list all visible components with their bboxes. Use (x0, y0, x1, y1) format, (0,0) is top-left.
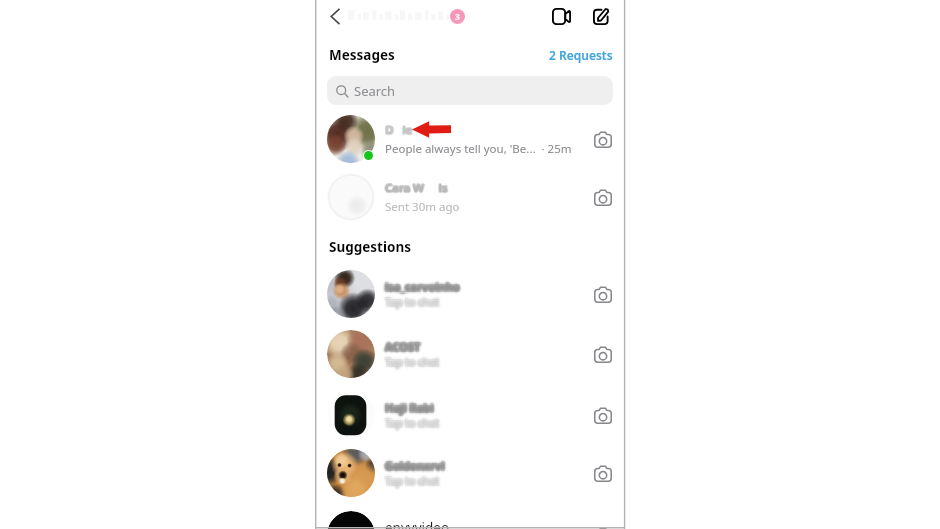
staticText: Cara W ls (385, 181, 448, 197)
staticText: ACOST (383, 339, 419, 354)
staticText: isa_carvoinho (386, 276, 461, 291)
staticText: D le (384, 123, 412, 139)
staticText: Tap to chat (382, 473, 437, 487)
staticText: Tap to chat (384, 477, 439, 491)
staticText: Tap to chat (384, 352, 439, 366)
staticText: Tap to chat (385, 474, 440, 488)
staticText: Haji Rabi (386, 399, 435, 414)
button[interactable]: Camera (590, 522, 616, 529)
staticText: D le (385, 121, 413, 137)
staticText: Cara W ls (386, 179, 449, 195)
staticText: Haji Rabi (386, 401, 435, 416)
staticText: Cara W ls (385, 180, 448, 196)
staticText: Tap to chat (386, 416, 441, 430)
button[interactable]: Haji Rabi (316, 386, 624, 444)
staticText: Goldenxrvl (382, 457, 442, 472)
staticText: Goldenxrvl (384, 457, 444, 472)
staticText: ACOST (386, 341, 422, 356)
staticText: Tap to chat (384, 419, 439, 433)
staticText: Cara W ls (385, 180, 448, 196)
staticText: Haji Rabi (382, 401, 431, 416)
staticText: Goldenxrvl (384, 459, 444, 474)
button[interactable]: Camera (590, 460, 616, 486)
staticText: Tap to chat (384, 418, 439, 432)
staticText: isa_carvoinho (385, 280, 460, 295)
staticText: Tap to chat (385, 297, 440, 311)
button[interactable]: envyvideo (316, 506, 624, 529)
staticText: ACOST (384, 339, 420, 354)
button[interactable]: 2 Requests (549, 47, 613, 63)
staticText: isa_carvoinho (388, 279, 463, 294)
staticText: isa_carvoinho (382, 280, 457, 295)
staticText: ACOST (383, 340, 419, 355)
staticText: Haji Rabi (385, 401, 434, 416)
staticText: Tap to chat (388, 417, 443, 431)
staticText: Tap to chat (386, 355, 441, 369)
staticText: ACOST (386, 338, 422, 353)
staticText: Tap to chat (386, 358, 441, 372)
button[interactable]: New message (588, 3, 614, 29)
button[interactable]: Video call (548, 3, 574, 29)
staticText: D le (384, 121, 412, 137)
staticText: Tap to chat (388, 354, 443, 368)
staticText: Haji Rabi (384, 398, 433, 413)
staticText: isa_carvoinho (385, 279, 460, 294)
button[interactable]: Camera (590, 126, 616, 152)
staticText: Tap to chat (384, 415, 439, 429)
staticText: Tap to chat (386, 354, 441, 368)
button[interactable]: Cara W ls (316, 170, 624, 224)
staticText: Goldenxrvl (388, 457, 448, 472)
staticText: Tap to chat (386, 356, 441, 370)
staticText: Tap to chat (385, 476, 440, 490)
button[interactable]: isa_carvoinho (316, 265, 624, 323)
staticText: Tap to chat (382, 355, 437, 369)
staticText: Goldenxrvl (387, 458, 447, 473)
button[interactable]: D le (316, 112, 624, 166)
staticText: Haji Rabi (385, 400, 434, 415)
staticText: Cara W ls (384, 180, 447, 196)
staticText: ACOST (384, 337, 420, 352)
staticText: Tap to chat (386, 418, 441, 432)
staticText: isa_carvoinho (386, 280, 461, 295)
staticText: Tap to chat (384, 415, 439, 429)
staticText: Tap to chat (386, 414, 441, 428)
staticText: D le (384, 122, 412, 138)
staticText: ACOST (387, 338, 423, 353)
staticText: Tap to chat (388, 294, 443, 308)
staticText: Cara W ls (386, 179, 449, 195)
staticText: Haji Rabi (388, 399, 437, 414)
staticText: Haji Rabi (383, 401, 432, 416)
staticText: Tap to chat (382, 417, 437, 431)
staticText: Goldenxrvl (388, 457, 448, 472)
staticText: Tap to chat (384, 294, 439, 308)
staticText: isa_carvoinho (384, 281, 459, 296)
staticText: ACOST (385, 337, 421, 352)
staticText: Haji Rabi (383, 401, 432, 416)
button[interactable]: Search (327, 76, 613, 105)
staticText: Haji Rabi (382, 400, 431, 415)
staticText: Goldenxrvl (384, 461, 444, 476)
staticText: Haji Rabi (386, 403, 435, 418)
button[interactable]: Camera (590, 184, 616, 210)
staticText: Tap to chat (382, 296, 437, 310)
staticText: D le (385, 124, 413, 140)
staticText: Tap to chat (387, 418, 442, 432)
staticText: Cara W ls (384, 180, 447, 196)
staticText: Goldenxrvl (386, 455, 446, 470)
button[interactable]: Camera (590, 402, 616, 428)
button[interactable]: Camera (590, 281, 616, 307)
staticText: Tap to chat (388, 356, 443, 370)
staticText: Haji Rabi (384, 399, 433, 414)
staticText: Tap to chat (384, 417, 439, 431)
staticText: Tap to chat (387, 354, 442, 368)
button[interactable]: Goldenxrvl (316, 444, 624, 502)
button[interactable]: ACOST (316, 325, 624, 383)
staticText: Tap to chat (383, 296, 438, 310)
staticText: ACOST (386, 337, 422, 352)
staticText: ACOST (384, 336, 420, 351)
staticText: ACOST (386, 339, 422, 354)
button[interactable]: Back (322, 3, 348, 29)
button[interactable]: Camera (590, 341, 616, 367)
staticText: Haji Rabi (387, 398, 436, 413)
staticText: isa_carvoinho (385, 278, 460, 293)
